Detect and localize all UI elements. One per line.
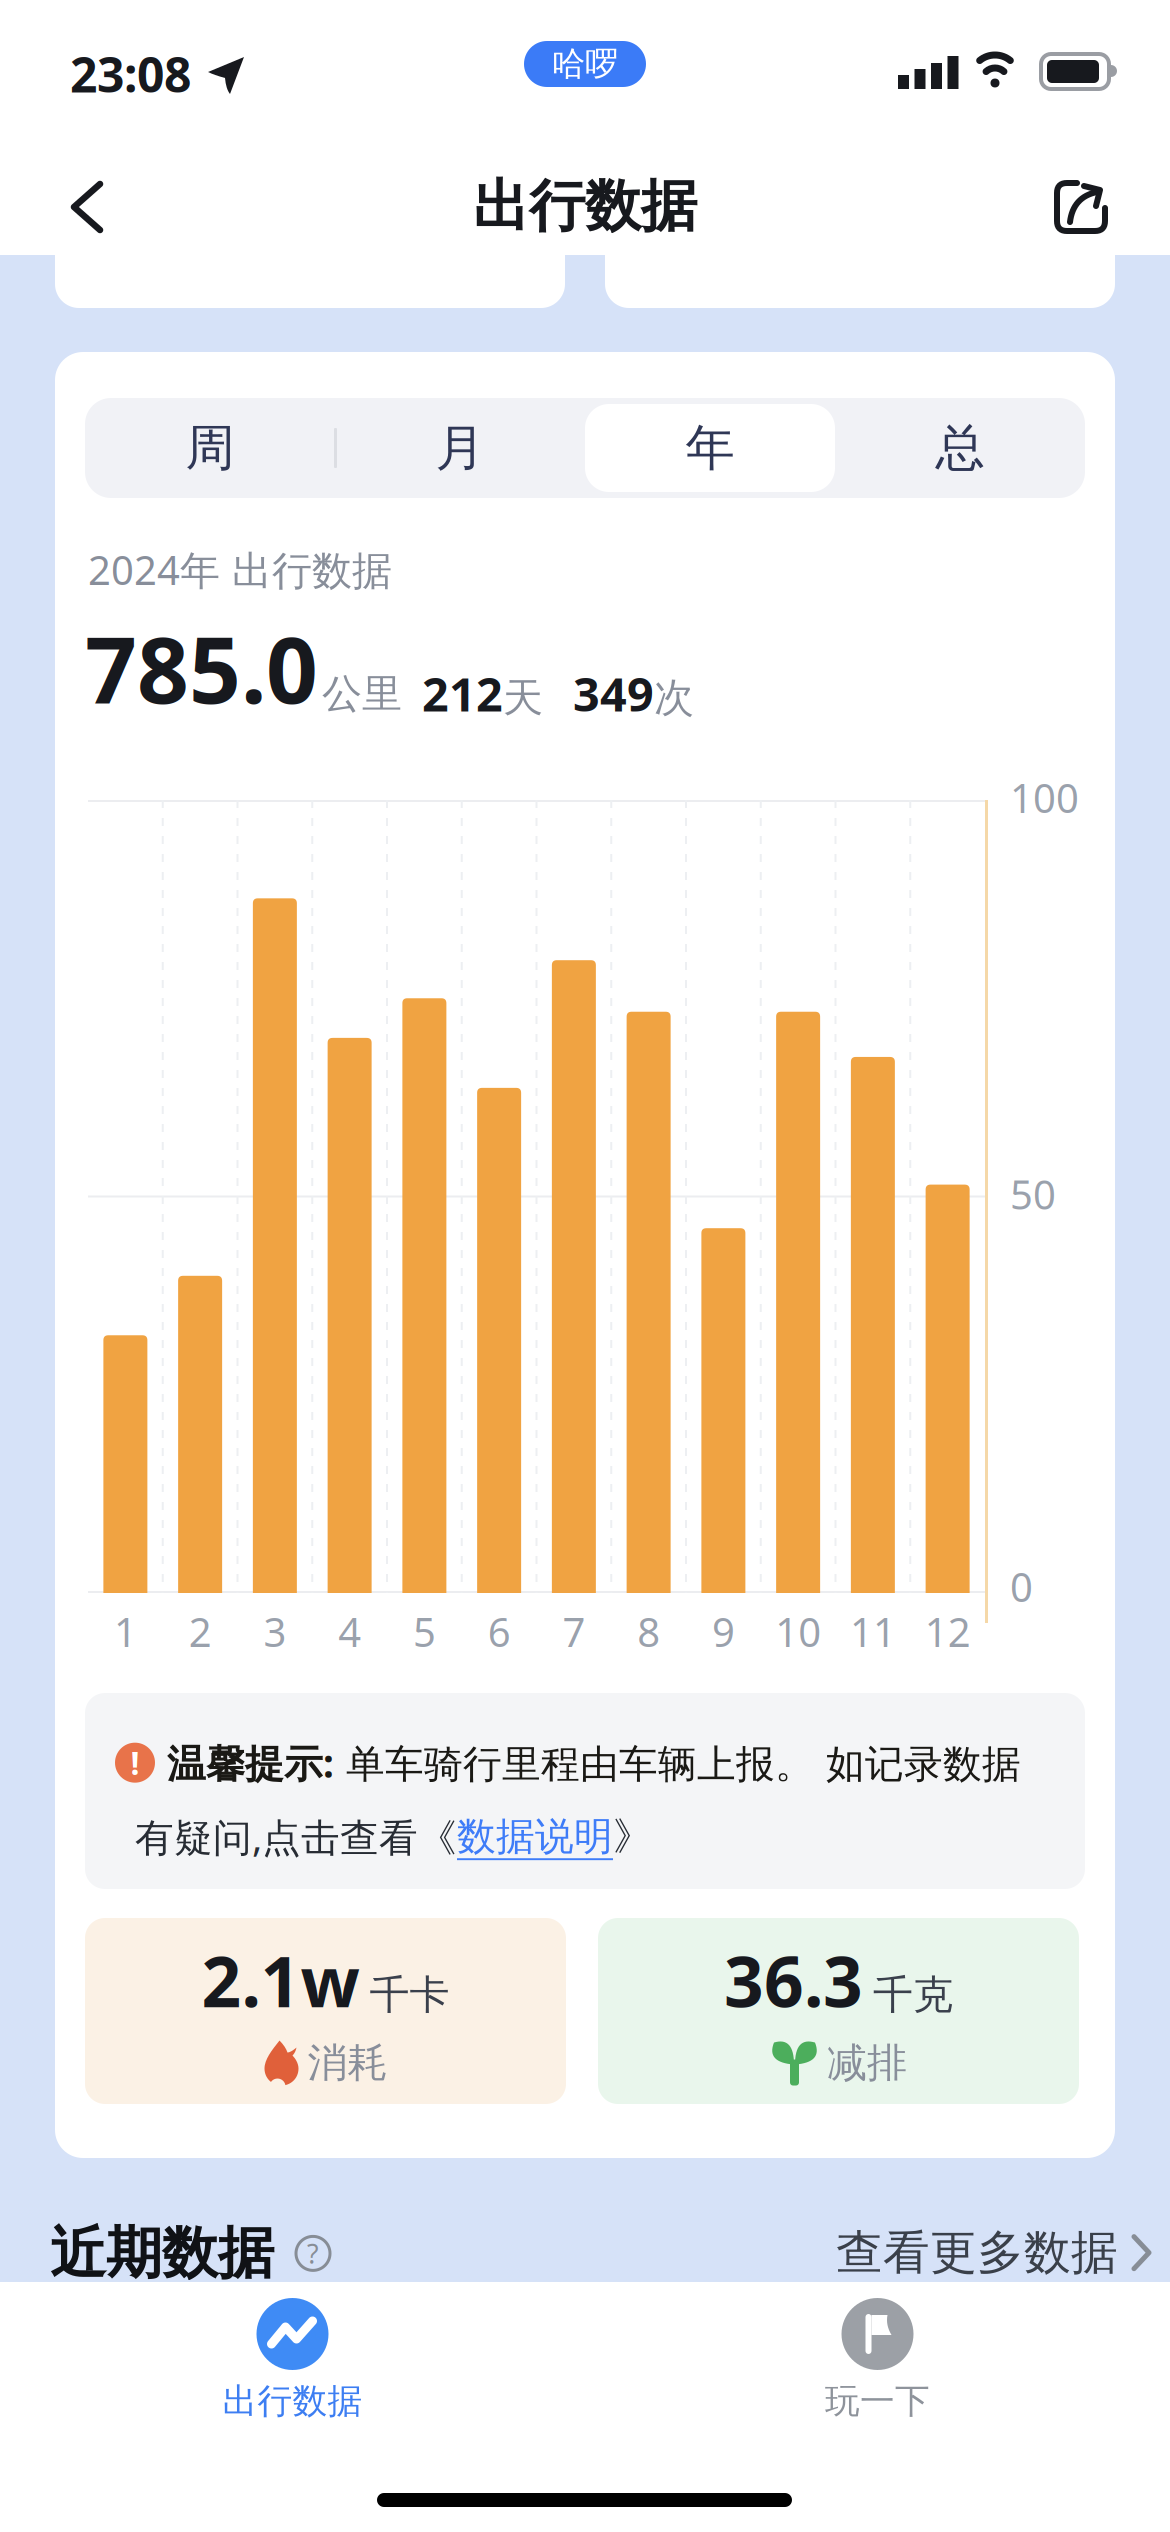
button[interactable]: 年 <box>585 398 835 498</box>
staticText: 周 <box>185 418 234 478</box>
staticText: 8 <box>637 1605 660 1658</box>
staticText: 12 <box>925 1605 971 1658</box>
staticText: 哈啰 <box>552 43 618 84</box>
button[interactable]: 数据说明 <box>457 1813 613 1860</box>
staticText: 次 <box>654 673 694 722</box>
button[interactable]: 总 <box>835 398 1085 498</box>
staticText: ! <box>130 1741 139 1784</box>
staticText: 查看更多数据 <box>836 2224 1118 2281</box>
staticText: 公里 <box>322 669 402 718</box>
staticText: 数据说明 <box>457 1813 613 1860</box>
staticText: 36.3 <box>724 1934 863 2026</box>
staticText: 玩一下 <box>825 2380 930 2423</box>
staticText: 23:08 <box>70 42 191 106</box>
staticText: 月 <box>435 418 484 478</box>
staticText: 10 <box>775 1605 821 1658</box>
staticText: 消耗 <box>307 2038 387 2088</box>
staticText: 总 <box>935 418 984 478</box>
staticText: 9 <box>712 1605 735 1658</box>
button[interactable]: Share <box>1030 0 1168 256</box>
staticText: 2 <box>189 1605 212 1658</box>
staticText: 年 <box>685 418 734 478</box>
staticText: 6 <box>488 1605 511 1658</box>
button[interactable]: 周 <box>85 398 335 498</box>
staticText: 出行数据 <box>222 2380 362 2423</box>
staticText: 100 <box>1010 771 1079 824</box>
staticText: 千克 <box>873 1970 953 2019</box>
button[interactable]: 月 <box>335 398 585 498</box>
staticText: ? <box>307 2236 319 2271</box>
staticText: 3 <box>263 1605 286 1658</box>
staticText: 2.1w <box>201 1934 359 2026</box>
staticText: 785.0 <box>85 608 318 728</box>
staticText: 近期数据 <box>50 2219 274 2288</box>
staticText: 50 <box>1010 1167 1056 1221</box>
button[interactable]: Back <box>0 0 131 252</box>
staticText: 349 <box>573 662 654 724</box>
staticText: 有疑问,点击查看《 <box>135 1811 457 1862</box>
staticText: 千卡 <box>369 1970 449 2019</box>
staticText: 7 <box>562 1605 585 1658</box>
staticText: 减排 <box>827 2038 907 2088</box>
staticText: 2024年 出行数据 <box>88 543 392 596</box>
staticText: 5 <box>413 1605 436 1658</box>
staticText: 》 <box>613 1813 652 1860</box>
button[interactable]: Help <box>294 2234 332 2272</box>
staticText: 4 <box>338 1605 361 1658</box>
button[interactable]: 出行数据 <box>0 2298 585 2423</box>
staticText: 212 <box>422 662 503 724</box>
staticText: 0 <box>1010 1560 1033 1613</box>
button[interactable]: 查看更多数据 <box>836 2224 1150 2281</box>
staticText: 1 <box>114 1605 137 1658</box>
button[interactable]: 玩一下 <box>585 2298 1170 2423</box>
staticText: 天 <box>503 673 543 722</box>
staticText: 温馨提示: 单车骑行里程由车辆上报。 如记录数据 <box>167 1737 1021 1788</box>
staticText: 出行数据 <box>473 172 697 241</box>
staticText: 11 <box>850 1605 896 1658</box>
